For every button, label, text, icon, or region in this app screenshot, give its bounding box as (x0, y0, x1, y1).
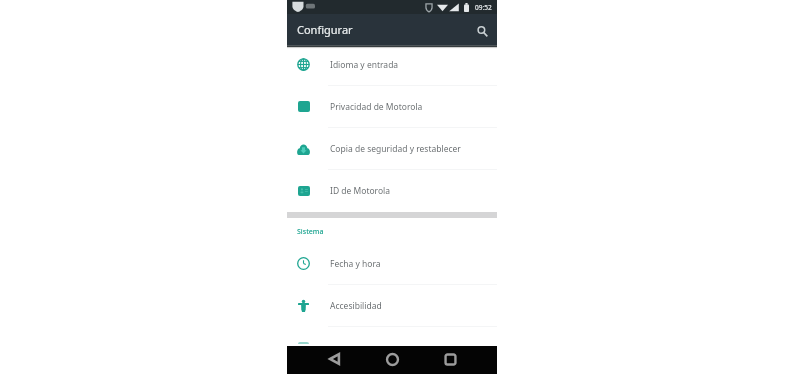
staticText: Privacidad de Motorola (330, 101, 423, 113)
button[interactable]: Search (472, 21, 492, 41)
staticText: 09:52 (475, 3, 492, 12)
button[interactable]: Fecha y hora (287, 243, 497, 285)
button[interactable]: Idioma y entrada (287, 44, 497, 86)
button[interactable]: ID de Motorola (287, 170, 497, 212)
staticText: Idioma y entrada (330, 59, 399, 71)
staticText: Accesibilidad (330, 300, 382, 312)
button[interactable]: Copia de seguridad y restablecer (287, 128, 497, 170)
staticText: ID de Motorola (330, 185, 391, 197)
staticText: Sistema (297, 227, 324, 237)
button[interactable]: Recent apps (437, 346, 463, 372)
button[interactable]: Privacidad de Motorola (287, 86, 497, 128)
staticText: Fecha y hora (330, 258, 381, 270)
button[interactable]: Home (379, 346, 405, 372)
button[interactable]: Back (321, 346, 347, 372)
button[interactable]: Accesibilidad (287, 285, 497, 327)
staticText: Configurar (297, 22, 353, 37)
staticText: Copia de seguridad y restablecer (330, 143, 461, 155)
